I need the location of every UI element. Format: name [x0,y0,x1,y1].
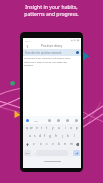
button[interactable]: Period [68,150,72,156]
staticText: t [46,126,48,130]
button[interactable]: b [56,140,62,148]
staticText: s [34,134,36,138]
staticText: GIF [34,119,38,122]
button[interactable]: Keyboard tool [66,119,69,122]
staticText: y [52,126,54,130]
staticText: Emotional state: Take into the helpful m… [24,57,71,66]
button[interactable]: m [68,140,74,148]
button[interactable]: l [71,132,77,140]
button[interactable]: Back [24,43,30,49]
staticText: a [29,134,31,138]
button[interactable]: n [62,140,68,148]
staticText: Insight in your habits, patterns and pro… [24,4,79,17]
button[interactable]: p [74,124,80,132]
button[interactable]: Keyboard tool [48,119,51,122]
staticText: j [62,134,63,138]
staticText: k [67,134,69,138]
staticText: o [70,126,72,130]
staticText: l [74,134,75,138]
button[interactable]: f [42,132,47,140]
button[interactable]: Assistant [26,119,29,122]
button[interactable]: i [62,124,68,132]
staticText: q [26,126,28,130]
button[interactable]: Enter [73,150,80,156]
button[interactable]: t [44,124,50,132]
staticText: z [33,142,35,146]
staticText: m [70,142,73,146]
staticText: h [55,134,57,138]
staticText: g [49,134,51,138]
button[interactable]: Keyboard tool [57,119,60,122]
button[interactable]: u [56,124,62,132]
staticText: ?123 [25,152,30,155]
staticText: e [36,126,38,130]
button[interactable]: r [39,124,44,132]
staticText: p [76,126,78,130]
button[interactable]: o [68,124,74,132]
button[interactable]: k [65,132,71,140]
button[interactable]: h [53,132,59,140]
button[interactable]: w [29,124,34,132]
button[interactable]: c [44,140,50,148]
button[interactable]: y [50,124,56,132]
staticText: x [40,142,42,146]
button[interactable]: z [30,140,37,148]
button[interactable]: d [37,132,42,140]
button[interactable]: ?123 [24,150,31,156]
button[interactable]: j [59,132,65,140]
staticText: 9:41 [25,39,30,42]
staticText: , [34,151,35,155]
staticText: u [58,126,60,130]
staticText: . [70,151,71,155]
staticText: d [39,134,41,138]
staticText: Describe the positive moment [25,51,62,55]
staticText: i [65,126,66,130]
button[interactable]: v [50,140,56,148]
button[interactable]: g [47,132,53,140]
staticText: n [64,142,66,146]
staticText: w [30,126,33,130]
button[interactable]: Describe the positive moment [25,49,79,56]
button[interactable]: e [34,124,39,132]
staticText: Positive diary [41,43,63,48]
button[interactable]: Backspace [74,141,80,147]
button[interactable]: Comma [32,150,36,156]
staticText: f [44,134,46,138]
button[interactable]: Shift [24,141,30,147]
button[interactable]: a [27,132,32,140]
staticText: v [52,142,54,146]
staticText: b [58,142,60,146]
staticText: c [46,142,48,146]
button[interactable]: q [24,124,29,132]
button[interactable]: Settings [75,119,78,122]
button[interactable]: s [32,132,37,140]
button[interactable]: x [37,140,44,148]
staticText: r [41,126,43,130]
